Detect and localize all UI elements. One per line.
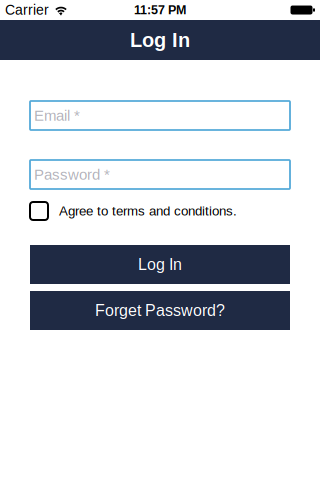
staticText: Password * [34,166,110,183]
staticText: Agree to terms and conditions. [59,204,237,218]
button[interactable]: Forget Password? [30,291,290,330]
button[interactable]: Agree to terms and conditions [30,202,48,220]
staticText: Forget Password? [95,302,225,319]
staticText: Email * [34,107,80,124]
button[interactable]: Email * [30,101,290,130]
staticText: Log In [138,256,182,273]
staticText: 11:57 PM [134,3,186,17]
staticText: Carrier [5,2,49,18]
staticText: Log In [130,29,190,51]
button[interactable]: Password * [30,160,290,189]
button[interactable]: Log In [30,245,290,284]
